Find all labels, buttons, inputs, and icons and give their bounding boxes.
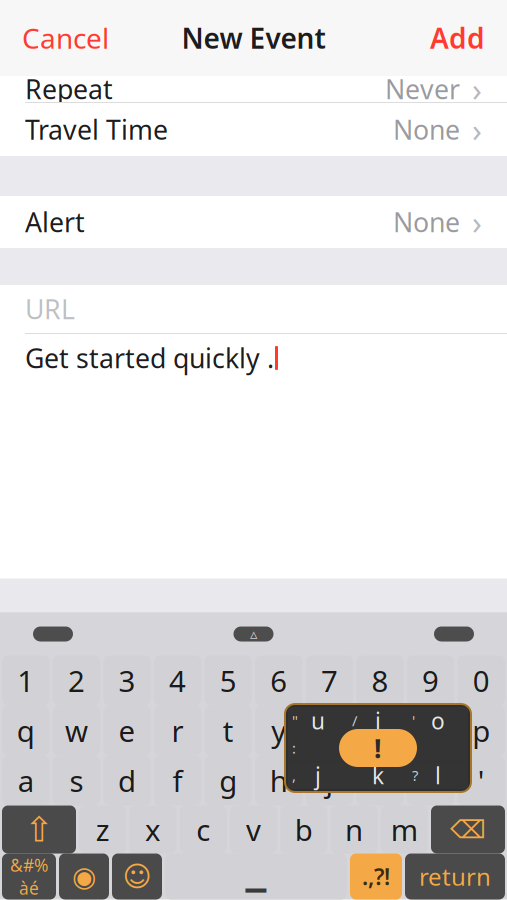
button[interactable]: 5 xyxy=(204,655,252,705)
button[interactable]: .,?! xyxy=(350,853,402,899)
staticText: 5 xyxy=(220,661,237,700)
button[interactable]: 9 xyxy=(407,655,454,705)
staticText: 3 xyxy=(118,661,135,700)
button[interactable]: r xyxy=(154,705,201,755)
staticText: 2 xyxy=(68,661,85,700)
staticText: v xyxy=(246,810,261,849)
staticText: None xyxy=(393,204,460,240)
staticText: › xyxy=(472,108,482,151)
staticText: s xyxy=(69,761,83,800)
staticText: / xyxy=(352,711,357,730)
button[interactable]: Next keyboard xyxy=(59,853,109,899)
button[interactable]: m xyxy=(381,805,428,853)
button[interactable]: v xyxy=(230,805,277,853)
staticText: &#% xyxy=(10,853,48,876)
button[interactable]: Symbols xyxy=(2,853,56,899)
staticText: n xyxy=(345,810,363,849)
staticText: › xyxy=(472,68,482,110)
button[interactable]: Emoji xyxy=(112,853,162,899)
staticText: 9 xyxy=(422,661,439,700)
staticText: t xyxy=(223,711,234,750)
button[interactable]: Suggestion two xyxy=(233,626,273,642)
staticText: Add xyxy=(430,19,485,57)
button[interactable]: 1 xyxy=(2,655,50,705)
button[interactable]: Cancel xyxy=(0,9,131,67)
staticText: ' xyxy=(478,761,485,800)
button[interactable]: Repeat xyxy=(0,76,507,102)
button[interactable]: l xyxy=(407,755,454,805)
button[interactable]: g xyxy=(204,755,252,805)
staticText: i xyxy=(375,706,381,736)
staticText: g xyxy=(219,761,237,800)
staticText: ! xyxy=(374,730,382,766)
button[interactable]: 0 xyxy=(457,655,505,705)
staticText: ' xyxy=(412,711,415,730)
staticText: Never xyxy=(385,71,460,107)
button[interactable]: q xyxy=(2,705,50,755)
button[interactable]: return xyxy=(405,853,505,899)
button[interactable]: t xyxy=(204,705,252,755)
button[interactable]: 4 xyxy=(154,655,201,705)
button[interactable]: a xyxy=(2,755,50,805)
staticText: r xyxy=(172,711,184,750)
staticText: e xyxy=(118,711,135,750)
button[interactable]: i xyxy=(356,705,404,755)
staticText: z xyxy=(96,810,110,849)
staticText: " xyxy=(292,711,298,730)
button[interactable]: y xyxy=(255,705,303,755)
button[interactable]: n xyxy=(330,805,378,853)
staticText: , xyxy=(292,766,296,785)
button[interactable]: c xyxy=(180,805,227,853)
button[interactable]: s xyxy=(53,755,100,805)
staticText: › xyxy=(472,201,482,243)
staticText: .,?! xyxy=(362,861,390,891)
staticText: u xyxy=(311,706,325,736)
staticText: return xyxy=(419,861,491,892)
button[interactable]: b xyxy=(280,805,327,853)
button[interactable]: Alert xyxy=(0,196,507,248)
staticText: 4 xyxy=(169,661,186,700)
staticText: Travel Time xyxy=(25,112,168,147)
button[interactable]: p xyxy=(457,705,505,755)
button[interactable]: Travel Time xyxy=(0,103,507,156)
button[interactable]: k xyxy=(356,755,404,805)
button[interactable]: ' xyxy=(457,755,505,805)
button[interactable]: 7 xyxy=(306,655,353,705)
staticText: u xyxy=(320,711,338,750)
button[interactable]: w xyxy=(53,705,100,755)
button[interactable]: x xyxy=(129,805,177,853)
staticText: o xyxy=(431,706,445,736)
button[interactable]: 3 xyxy=(103,655,151,705)
staticText: 7 xyxy=(321,661,338,700)
button[interactable]: e xyxy=(103,705,151,755)
button[interactable]: j xyxy=(306,755,353,805)
staticText: ⌫ xyxy=(450,815,486,844)
button[interactable]: h xyxy=(255,755,303,805)
button[interactable]: Shift xyxy=(2,805,76,853)
staticText: c xyxy=(196,810,210,849)
button[interactable]: 6 xyxy=(255,655,303,705)
button[interactable]: z xyxy=(79,805,126,853)
staticText: ? xyxy=(412,766,418,785)
button[interactable]: 2 xyxy=(53,655,100,705)
staticText: j xyxy=(325,761,333,800)
staticText: ⇧ xyxy=(24,810,53,849)
button[interactable]: u xyxy=(306,705,353,755)
button[interactable]: Suggestion three xyxy=(434,626,474,641)
button[interactable]: Add xyxy=(408,9,507,67)
staticText: a xyxy=(18,761,34,800)
button[interactable]: 8 xyxy=(356,655,404,705)
staticText: o xyxy=(422,711,440,750)
button[interactable]: d xyxy=(103,755,151,805)
button[interactable]: Suggestion one xyxy=(33,626,73,641)
staticText: Cancel xyxy=(22,19,109,57)
button[interactable]: f xyxy=(154,755,201,805)
staticText: k xyxy=(372,760,384,790)
staticText: f xyxy=(173,761,183,800)
staticText: New Event xyxy=(181,19,325,57)
staticText: x xyxy=(145,810,161,849)
button[interactable]: Delete xyxy=(431,805,505,853)
button[interactable]: o xyxy=(407,705,454,755)
button[interactable]: Space xyxy=(165,853,347,899)
staticText: ▁ xyxy=(245,861,266,892)
